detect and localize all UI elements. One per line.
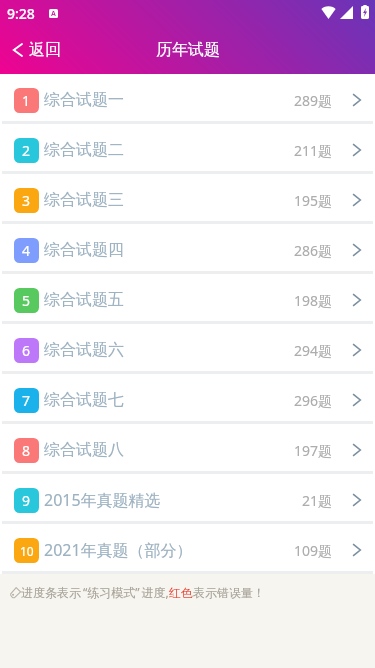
staticText: 7	[22, 391, 31, 410]
staticText: 综合试题二	[44, 140, 124, 160]
staticText: 1	[22, 91, 31, 110]
staticText: 9:28	[7, 4, 35, 23]
staticText: 红色	[169, 585, 193, 600]
button[interactable]: 10	[0, 524, 375, 574]
staticText: 2	[22, 141, 31, 160]
button[interactable]: 1	[0, 74, 375, 124]
staticText: 综合试题七	[44, 390, 124, 410]
staticText: 195题	[294, 191, 333, 210]
staticText: 6	[22, 341, 31, 360]
button[interactable]: 5	[0, 274, 375, 324]
staticText: 109题	[294, 541, 333, 560]
button[interactable]: 3	[0, 174, 375, 224]
staticText: 综合试题三	[44, 190, 124, 210]
staticText: 综合试题六	[44, 340, 124, 360]
staticText: 综合试题四	[44, 240, 124, 260]
staticText: 296题	[294, 391, 333, 410]
staticText: 5	[22, 291, 31, 310]
button[interactable]: 8	[0, 424, 375, 474]
button[interactable]: 2	[0, 124, 375, 174]
staticText: 3	[22, 191, 31, 210]
button[interactable]: 9	[0, 474, 375, 524]
button[interactable]: 6	[0, 324, 375, 374]
staticText: 10	[20, 543, 34, 559]
staticText: 21题	[302, 491, 333, 510]
staticText: 8	[22, 441, 31, 460]
button[interactable]: 4	[0, 224, 375, 274]
staticText: 历年试题	[156, 40, 220, 60]
staticText: 2015年真题精选	[44, 489, 161, 511]
staticText: 294题	[294, 341, 333, 360]
staticText: 进度条表示 “练习模式” 进度,	[21, 584, 169, 600]
staticText: 286题	[294, 241, 333, 260]
staticText: 9	[22, 491, 31, 510]
staticText: 197题	[294, 441, 333, 460]
button[interactable]: 7	[0, 374, 375, 424]
staticText: 211题	[294, 141, 333, 160]
staticText: 198题	[294, 291, 333, 310]
staticText: 综合试题五	[44, 290, 124, 310]
staticText: 289题	[294, 91, 333, 110]
staticText: 综合试题一	[44, 90, 124, 110]
staticText: 4	[22, 241, 31, 260]
staticText: 表示错误量！	[193, 585, 265, 600]
staticText: A	[51, 9, 56, 18]
staticText: 2021年真题（部分）	[44, 539, 193, 561]
button[interactable]: 返回 Back	[0, 26, 75, 74]
staticText: 综合试题八	[44, 440, 124, 460]
staticText: 返回	[29, 40, 61, 60]
